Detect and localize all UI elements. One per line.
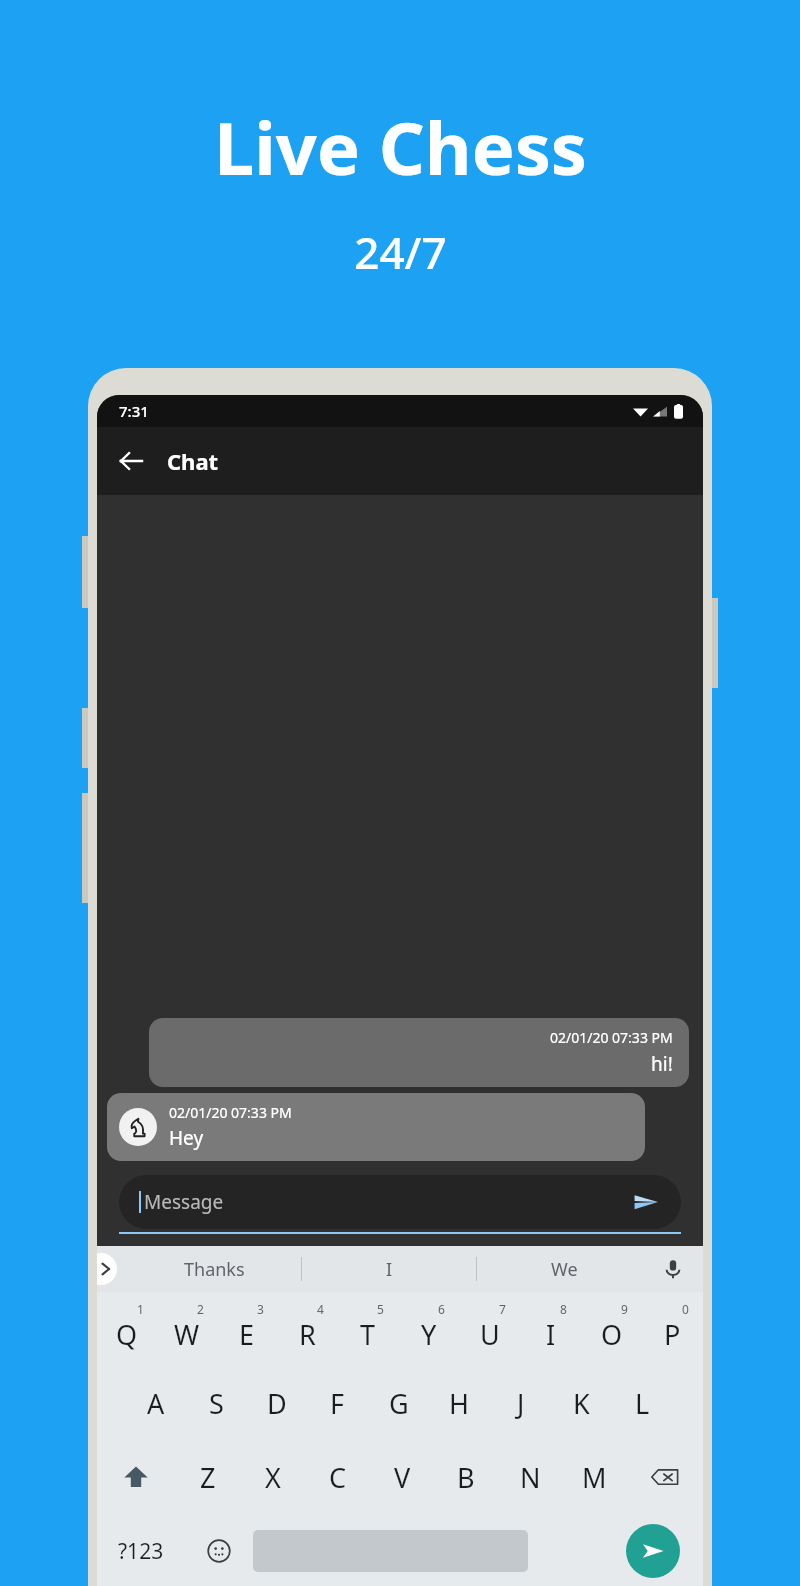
staticText: 1 [137, 1301, 144, 1317]
staticText: 3 [257, 1301, 264, 1317]
staticText: F [330, 1385, 345, 1422]
staticText: K [573, 1385, 590, 1422]
staticText: Z [200, 1459, 216, 1496]
staticText: Message [144, 1189, 224, 1215]
button[interactable]: O [581, 1292, 642, 1366]
staticText: hi! [651, 1051, 673, 1077]
staticText: H [449, 1385, 470, 1422]
button[interactable]: X [240, 1440, 305, 1514]
button[interactable]: M [562, 1440, 626, 1514]
staticText: J [517, 1385, 525, 1422]
staticText: 2 [197, 1301, 204, 1317]
button[interactable]: 02/01/20 07:33 PM [149, 1018, 689, 1087]
staticText: T [360, 1316, 376, 1353]
button[interactable]: Send [603, 1514, 703, 1586]
button[interactable]: We [477, 1246, 651, 1292]
button[interactable]: D [246, 1366, 307, 1440]
button[interactable]: J [490, 1366, 551, 1440]
button[interactable]: V [370, 1440, 434, 1514]
staticText: 7:31 [119, 401, 149, 421]
staticText: Hey [169, 1125, 204, 1151]
button[interactable]: S [186, 1366, 246, 1440]
button[interactable]: Emoji [184, 1514, 253, 1586]
button[interactable]: G [368, 1366, 429, 1440]
staticText: I [546, 1316, 556, 1353]
staticText: B [457, 1459, 475, 1496]
staticText: 02/01/20 07:33 PM [550, 1028, 673, 1047]
button[interactable]: N [498, 1440, 562, 1514]
staticText: We [551, 1257, 578, 1282]
button[interactable]: Shift [97, 1440, 175, 1514]
staticText: Y [421, 1316, 437, 1353]
staticText: M [582, 1459, 607, 1496]
staticText: S [209, 1385, 224, 1422]
button[interactable]: Back [109, 439, 153, 483]
button[interactable]: Expand [97, 1253, 117, 1285]
staticText: R [299, 1316, 316, 1353]
staticText: D [267, 1385, 287, 1422]
staticText: G [389, 1385, 409, 1422]
staticText: O [601, 1316, 623, 1353]
button[interactable]: L [612, 1366, 673, 1440]
staticText: W [174, 1316, 200, 1353]
button[interactable]: ?123 [97, 1514, 184, 1586]
staticText: 9 [621, 1301, 628, 1317]
button[interactable]: Thanks [127, 1246, 301, 1292]
button[interactable]: Send [631, 1187, 661, 1217]
button[interactable]: K [551, 1366, 612, 1440]
button[interactable]: Z [175, 1440, 240, 1514]
staticText: U [480, 1316, 500, 1353]
staticText: Thanks [184, 1257, 245, 1282]
button[interactable]: F [307, 1366, 368, 1440]
button[interactable]: B [434, 1440, 498, 1514]
staticText: 8 [560, 1301, 567, 1317]
staticText: 02/01/20 07:33 PM [169, 1103, 292, 1122]
staticText: C [329, 1459, 347, 1496]
staticText: E [239, 1316, 255, 1353]
staticText: A [147, 1385, 165, 1422]
staticText: Chat [167, 446, 219, 476]
staticText: L [635, 1385, 650, 1422]
button[interactable]: Backspace [626, 1440, 703, 1514]
staticText: P [664, 1316, 681, 1353]
staticText: X [265, 1459, 281, 1496]
staticText: 0 [682, 1301, 689, 1317]
staticText: 5 [377, 1301, 384, 1317]
button[interactable]: E [217, 1292, 277, 1366]
button[interactable]: 02/01/20 07:33 PM [107, 1093, 645, 1161]
staticText: N [520, 1459, 541, 1496]
staticText: 6 [438, 1301, 445, 1317]
button[interactable]: I [302, 1246, 476, 1292]
staticText: ?123 [118, 1537, 164, 1566]
button[interactable]: A [126, 1366, 186, 1440]
staticText: V [394, 1459, 411, 1496]
button[interactable]: Y [398, 1292, 459, 1366]
button[interactable]: C [305, 1440, 370, 1514]
button[interactable]: I [520, 1292, 581, 1366]
button[interactable]: R [277, 1292, 337, 1366]
button[interactable]: Voice input [651, 1246, 695, 1292]
button[interactable]: Message [119, 1175, 681, 1229]
staticText: Q [116, 1316, 138, 1353]
button[interactable]: Q [97, 1292, 157, 1366]
button[interactable]: W [157, 1292, 217, 1366]
button[interactable]: H [429, 1366, 490, 1440]
staticText: Live Chess [214, 98, 587, 196]
staticText: 24/7 [354, 222, 447, 282]
staticText: 4 [317, 1301, 324, 1317]
staticText: I [386, 1257, 393, 1282]
button[interactable]: P [642, 1292, 703, 1366]
button[interactable]: U [459, 1292, 520, 1366]
staticText: 7 [499, 1301, 506, 1317]
button[interactable]: T [337, 1292, 398, 1366]
